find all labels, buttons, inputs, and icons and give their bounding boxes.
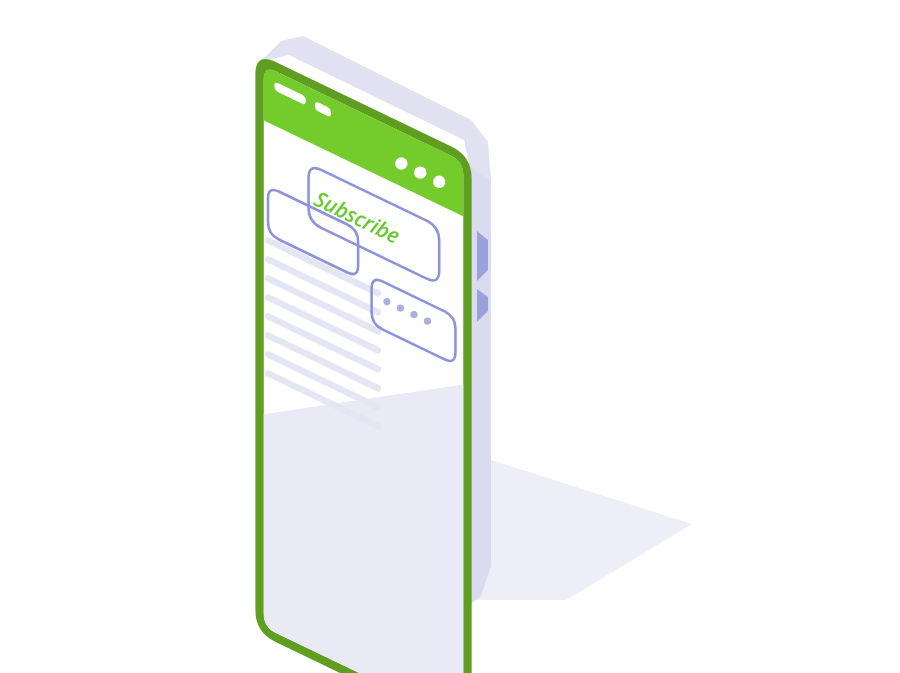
button[interactable]: Subscribe app phone illustration	[0, 0, 900, 673]
